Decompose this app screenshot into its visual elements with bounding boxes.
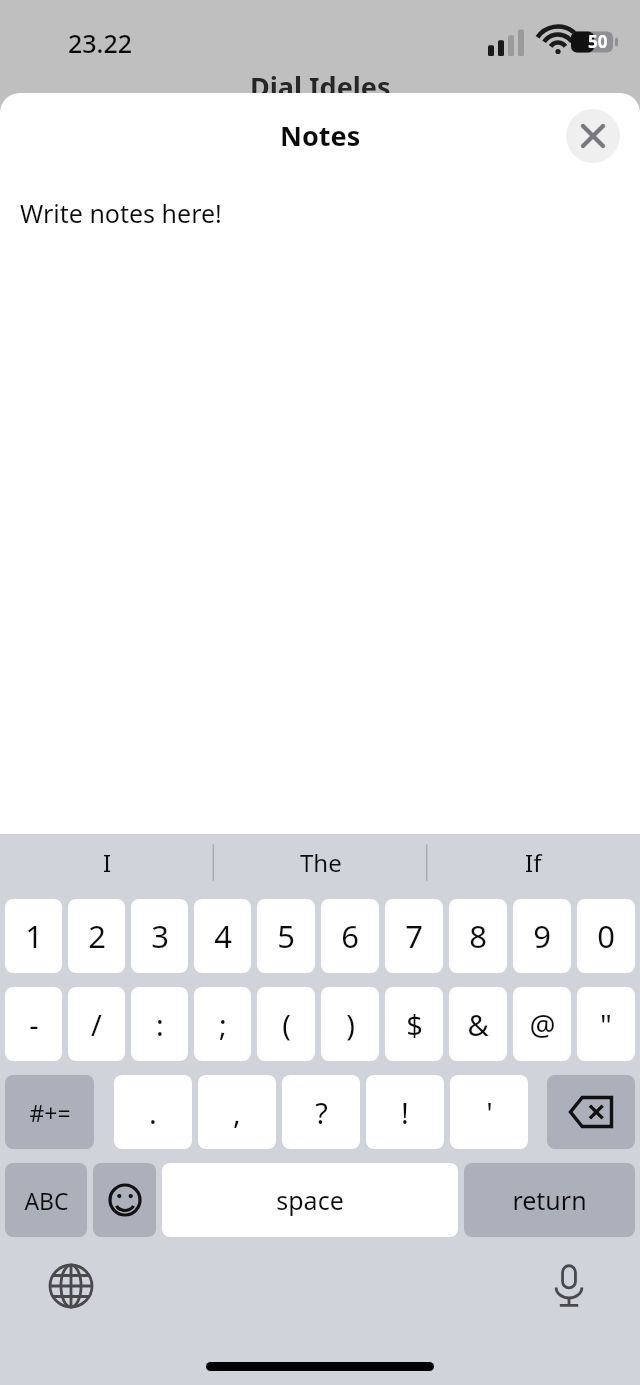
button[interactable]: @ (513, 987, 571, 1061)
button[interactable]: 8 (449, 899, 507, 973)
staticText: , (233, 1093, 241, 1132)
button[interactable]: 9 (513, 899, 571, 973)
staticText: : (156, 1005, 164, 1044)
button[interactable]: Backspace (547, 1075, 635, 1149)
button[interactable]: 5 (257, 899, 315, 973)
staticText: & (467, 1005, 489, 1044)
staticText: 6 (341, 915, 359, 957)
staticText: 5 (277, 915, 295, 957)
staticText: 1 (25, 915, 43, 957)
button[interactable]: - (5, 987, 62, 1061)
button[interactable]: / (68, 987, 125, 1061)
staticText: space (276, 1183, 344, 1217)
staticText: 3 (151, 915, 169, 957)
button[interactable]: 0 (577, 899, 635, 973)
staticText: 9 (533, 915, 551, 957)
staticText: 0 (597, 915, 615, 957)
staticText: Write notes here! (20, 196, 222, 230)
staticText: ' (486, 1093, 493, 1132)
staticText: @ (529, 1005, 556, 1044)
staticText: ! (401, 1093, 409, 1132)
button[interactable]: Close (566, 109, 620, 163)
staticText: return (512, 1183, 587, 1217)
staticText: / (91, 1005, 102, 1044)
button[interactable]: : (131, 987, 188, 1061)
button[interactable]: 3 (131, 899, 188, 973)
button[interactable]: ; (194, 987, 251, 1061)
staticText: - (29, 1005, 39, 1044)
staticText: 8 (469, 915, 487, 957)
button[interactable]: 4 (194, 899, 251, 973)
button[interactable]: 2 (68, 899, 125, 973)
button[interactable]: #+= (5, 1075, 94, 1149)
button[interactable]: ? (282, 1075, 360, 1149)
staticText: Dial Ideles (250, 68, 391, 105)
button[interactable]: ) (321, 987, 379, 1061)
button[interactable]: Dictation (538, 1255, 600, 1317)
button[interactable]: If (427, 834, 640, 891)
button[interactable]: ! (366, 1075, 444, 1149)
button[interactable]: 7 (385, 899, 443, 973)
button[interactable]: space (162, 1163, 458, 1237)
button[interactable]: , (198, 1075, 276, 1149)
button[interactable]: ' (450, 1075, 528, 1149)
button[interactable]: 1 (5, 899, 62, 973)
button[interactable]: return (464, 1163, 635, 1237)
staticText: 50 (588, 30, 608, 53)
staticText: #+= (29, 1097, 71, 1128)
staticText: 23.22 (68, 26, 133, 60)
staticText: 2 (88, 915, 106, 957)
staticText: 7 (405, 915, 423, 957)
button[interactable]: $ (385, 987, 443, 1061)
staticText: ) (346, 1005, 355, 1044)
staticText: " (600, 1005, 612, 1044)
staticText: Notes (280, 117, 361, 154)
button[interactable]: & (449, 987, 507, 1061)
button[interactable]: Write notes here! (0, 178, 640, 834)
button[interactable]: I (0, 834, 214, 891)
staticText: ( (282, 1005, 291, 1044)
staticText: ABC (24, 1185, 69, 1216)
button[interactable]: ( (257, 987, 315, 1061)
staticText: If (525, 846, 542, 879)
staticText: The (300, 846, 342, 879)
staticText: . (149, 1093, 157, 1132)
staticText: $ (406, 1005, 423, 1044)
staticText: ; (219, 1005, 227, 1044)
staticText: 4 (214, 915, 232, 957)
staticText: I (103, 846, 112, 879)
button[interactable]: Change keyboard (40, 1255, 102, 1317)
button[interactable]: " (577, 987, 635, 1061)
button[interactable]: Emoji (93, 1163, 156, 1237)
button[interactable]: The (214, 834, 427, 891)
button[interactable]: . (114, 1075, 192, 1149)
button[interactable]: ABC (5, 1163, 87, 1237)
button[interactable]: 6 (321, 899, 379, 973)
staticText: ? (315, 1093, 328, 1132)
